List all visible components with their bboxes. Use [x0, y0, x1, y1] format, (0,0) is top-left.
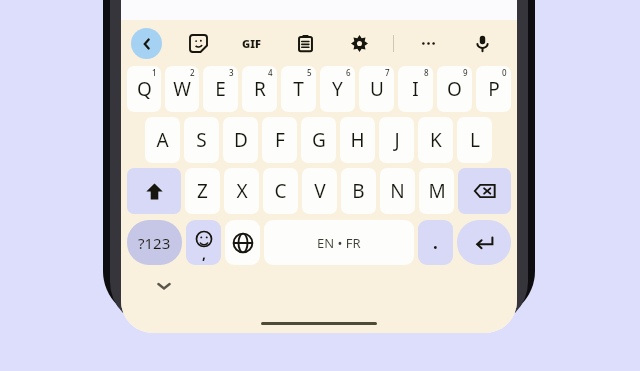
button[interactable]: Change language	[225, 220, 260, 265]
button[interactable]: K	[418, 117, 453, 163]
staticText: E	[215, 76, 226, 102]
staticText: 6	[346, 67, 351, 78]
staticText: U	[370, 76, 384, 102]
button[interactable]: Enter	[457, 220, 511, 265]
button[interactable]: A	[145, 117, 180, 163]
staticText: P	[488, 76, 500, 102]
button[interactable]: P	[476, 66, 511, 112]
staticText: K	[430, 127, 442, 153]
staticText: GIF	[242, 36, 261, 51]
button[interactable]: F	[262, 117, 297, 163]
staticText: L	[470, 127, 480, 153]
button[interactable]: ?123	[127, 220, 182, 265]
button[interactable]: Back	[131, 28, 162, 59]
button[interactable]: Clipboard	[290, 28, 320, 58]
staticText: 9	[463, 67, 468, 78]
staticText: 0	[502, 67, 507, 78]
button[interactable]: Sticker	[183, 28, 213, 58]
staticText: 5	[307, 67, 312, 78]
staticText: Z	[197, 178, 208, 204]
button[interactable]: C	[263, 168, 298, 214]
staticText: H	[350, 127, 365, 153]
staticText: 8	[424, 67, 429, 78]
button[interactable]: EN • FR	[264, 220, 414, 265]
staticText: D	[234, 127, 248, 153]
staticText: 7	[385, 67, 390, 78]
button[interactable]: U	[359, 66, 394, 112]
button[interactable]: R	[242, 66, 277, 112]
button[interactable]: Emoji and comma	[186, 220, 221, 265]
staticText: 3	[229, 67, 234, 78]
staticText: R	[254, 76, 266, 102]
button[interactable]: E	[203, 66, 238, 112]
button[interactable]: D	[223, 117, 258, 163]
button[interactable]: O	[437, 66, 472, 112]
button[interactable]: More options	[413, 28, 443, 58]
staticText: X	[236, 178, 248, 204]
staticText: O	[447, 76, 462, 102]
button[interactable]: L	[457, 117, 492, 163]
button[interactable]: B	[341, 168, 376, 214]
staticText: Y	[332, 76, 343, 102]
staticText: V	[314, 178, 326, 204]
staticText: N	[390, 178, 405, 204]
staticText: G	[312, 127, 326, 153]
staticText: EN • FR	[317, 234, 361, 252]
staticText: S	[196, 127, 207, 153]
staticText: F	[275, 127, 285, 153]
staticText: .	[433, 231, 438, 254]
staticText: J	[394, 127, 400, 153]
staticText: 4	[268, 67, 273, 78]
staticText: ,	[202, 244, 206, 263]
button[interactable]: H	[340, 117, 375, 163]
staticText: ?123	[138, 233, 171, 253]
staticText: Q	[137, 76, 152, 102]
button[interactable]: Backspace	[458, 168, 511, 214]
staticText: C	[274, 178, 287, 204]
button[interactable]: I	[398, 66, 433, 112]
button[interactable]: Voice input	[467, 28, 497, 58]
staticText: B	[352, 178, 365, 204]
button[interactable]: Z	[185, 168, 220, 214]
button[interactable]: S	[184, 117, 219, 163]
staticText: M	[428, 178, 446, 204]
staticText: W	[173, 76, 191, 102]
button[interactable]: V	[302, 168, 337, 214]
button[interactable]: G	[301, 117, 336, 163]
button[interactable]: Y	[320, 66, 355, 112]
staticText: 1	[152, 67, 157, 78]
button[interactable]: .	[418, 220, 453, 265]
button[interactable]: J	[379, 117, 414, 163]
staticText: T	[293, 76, 304, 102]
button[interactable]: Hide keyboard	[154, 276, 174, 296]
button[interactable]: X	[224, 168, 259, 214]
button[interactable]: Q	[127, 66, 161, 112]
staticText: 2	[190, 67, 195, 78]
button[interactable]: N	[380, 168, 415, 214]
button[interactable]: GIF	[236, 28, 266, 58]
staticText: A	[156, 127, 169, 153]
button[interactable]: Shift	[127, 168, 181, 214]
button[interactable]: Settings	[344, 28, 374, 58]
button[interactable]: W	[165, 66, 199, 112]
button[interactable]: T	[281, 66, 316, 112]
button[interactable]: M	[419, 168, 454, 214]
staticText: I	[412, 76, 419, 102]
